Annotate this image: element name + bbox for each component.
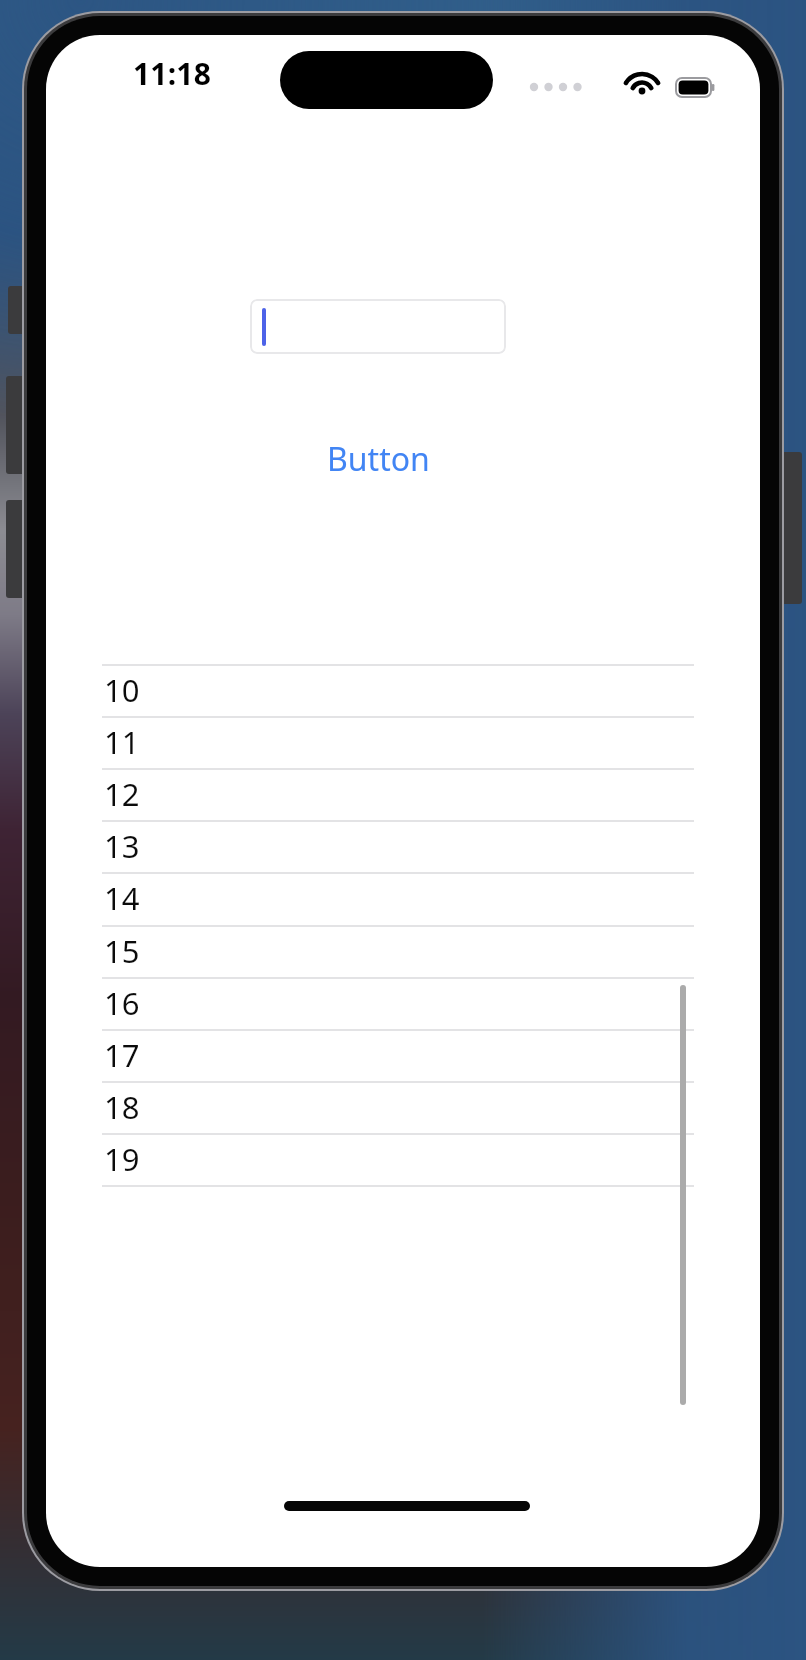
staticText: 11 — [104, 721, 140, 763]
staticText: Button — [327, 437, 430, 481]
button[interactable]: 18 — [102, 1081, 752, 1133]
button[interactable]: 12 — [102, 768, 752, 820]
staticText: 17 — [104, 1034, 140, 1076]
staticText: 14 — [104, 877, 140, 919]
button[interactable]: 15 — [102, 925, 752, 977]
staticText: 10 — [104, 669, 140, 711]
staticText: 11:18 — [133, 53, 212, 94]
staticText: 15 — [104, 930, 140, 972]
button[interactable]: 11 — [102, 716, 752, 768]
staticText: 12 — [104, 773, 140, 815]
staticText: 18 — [104, 1086, 140, 1128]
button[interactable]: 17 — [102, 1029, 752, 1081]
button[interactable]: Button — [325, 435, 431, 483]
staticText: 19 — [104, 1138, 140, 1180]
button[interactable]: 19 — [102, 1133, 752, 1185]
staticText: 13 — [104, 825, 140, 867]
staticText: 16 — [104, 982, 140, 1024]
button[interactable]: 14 — [102, 872, 752, 924]
button[interactable]: Text field — [250, 299, 506, 354]
button[interactable]: 13 — [102, 820, 752, 872]
button[interactable]: 10 — [102, 664, 752, 716]
button[interactable]: 16 — [102, 977, 752, 1029]
